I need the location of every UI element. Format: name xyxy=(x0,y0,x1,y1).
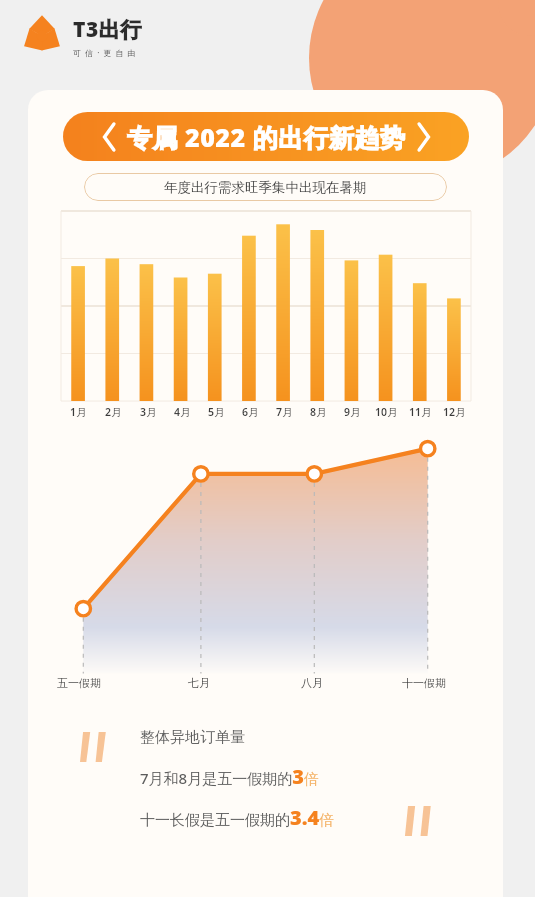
button[interactable]: 专属 2022 的出行新趋势 xyxy=(63,112,469,161)
staticText: 10月 xyxy=(375,405,398,419)
staticText: 年度出行需求旺季集中出现在暑期 xyxy=(164,179,367,196)
staticText: 七月 xyxy=(188,676,210,690)
staticText: 五一假期 xyxy=(57,676,101,690)
staticText: 12月 xyxy=(443,405,466,419)
staticText: 十一假期 xyxy=(402,676,446,690)
staticText: 9月 xyxy=(344,405,361,419)
staticText: 5月 xyxy=(208,405,225,419)
staticText: 3月 xyxy=(140,405,157,419)
button[interactable]: T3 chuxing logo xyxy=(16,10,146,62)
staticText: 2月 xyxy=(105,405,122,419)
staticText: 11月 xyxy=(409,405,432,419)
staticText: 专属 2022 的出行新趋势 xyxy=(127,120,406,154)
staticText: 可 信 · 更 自 由 xyxy=(73,47,137,58)
staticText: 1月 xyxy=(70,405,87,419)
staticText: 4月 xyxy=(174,405,191,419)
staticText: 7月和8月是五一假期的3倍 xyxy=(140,763,319,790)
staticText: 八月 xyxy=(301,676,323,690)
staticText: 8月 xyxy=(310,405,327,419)
staticText: 十一长假是五一假期的3.4倍 xyxy=(140,804,335,831)
staticText: 整体异地订单量 xyxy=(140,728,245,747)
button[interactable]: 年度出行需求旺季集中出现在暑期 xyxy=(84,173,447,201)
staticText: 6月 xyxy=(242,405,259,419)
staticText: 7月 xyxy=(276,405,293,419)
staticText: T3出行 xyxy=(73,15,142,44)
other: T3 chuxing logo xyxy=(20,14,64,58)
